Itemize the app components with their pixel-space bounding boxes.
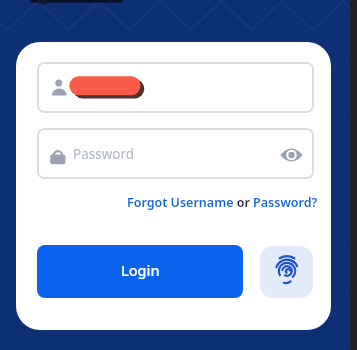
button[interactable]: [260, 246, 313, 298]
button[interactable]: Password: [37, 128, 314, 179]
button[interactable]: Forgot Username or Password?: [127, 194, 318, 211]
button[interactable]: [275, 139, 308, 171]
staticText: Login: [121, 260, 160, 280]
staticText: Password: [73, 145, 135, 163]
button[interactable]: [37, 62, 314, 113]
button[interactable]: Login: [37, 245, 243, 298]
